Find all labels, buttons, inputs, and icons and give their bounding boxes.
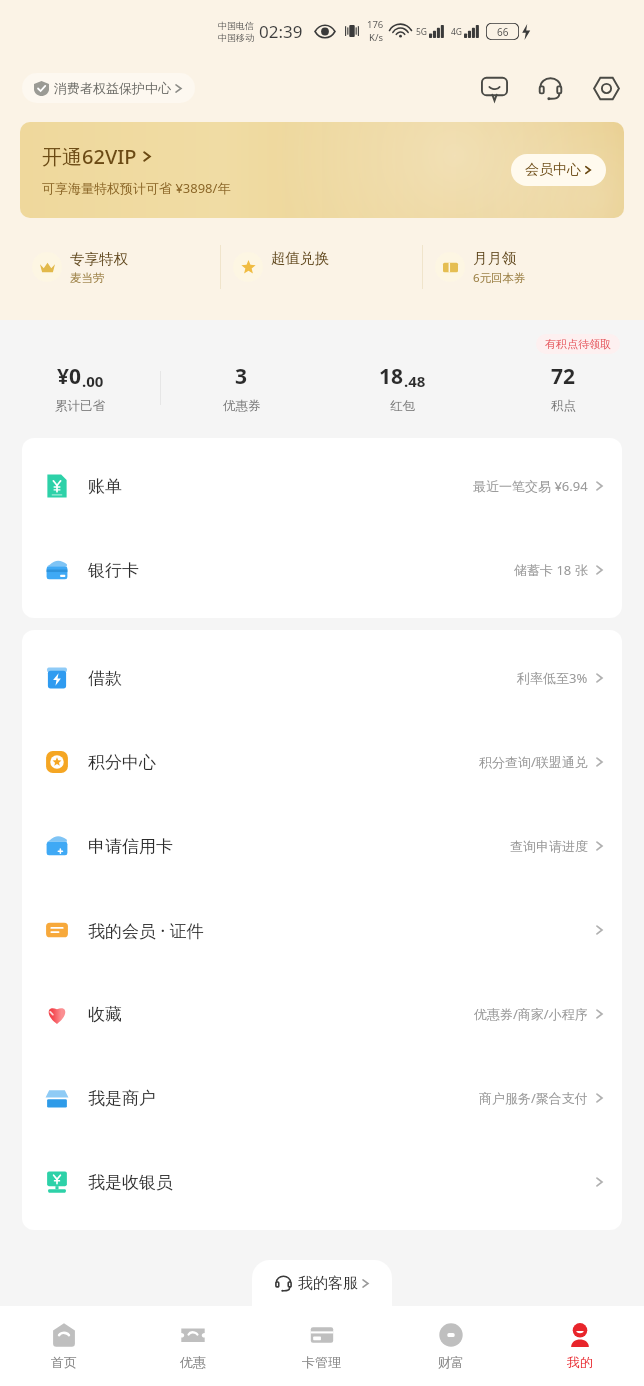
staticText: 72 xyxy=(551,362,576,391)
staticText: 卡管理 xyxy=(302,1354,341,1370)
staticText: 5G xyxy=(416,26,428,38)
button[interactable]: 会员中心 xyxy=(511,154,606,186)
staticText: 6元回本券 xyxy=(473,270,526,286)
staticText: 3 xyxy=(235,362,248,391)
staticText: 02:39 xyxy=(259,20,303,43)
staticText: 借款 xyxy=(88,668,122,689)
staticText: 18 xyxy=(379,362,404,391)
staticText: 储蓄卡 18 张 xyxy=(514,561,588,579)
button[interactable]: 我是收银员 xyxy=(22,1140,622,1224)
staticText: 4G xyxy=(451,26,463,38)
button[interactable]: 收藏 xyxy=(22,972,622,1056)
button[interactable]: 月月领 xyxy=(423,228,624,306)
staticText: 优惠券/商家/小程序 xyxy=(474,1005,588,1023)
button[interactable]: 借款 xyxy=(22,636,622,720)
button[interactable]: 有积点待领取 xyxy=(536,334,620,354)
button[interactable]: Customer service xyxy=(530,68,570,108)
staticText: 月月领 xyxy=(473,249,517,267)
staticText: 首页 xyxy=(51,1354,77,1370)
button[interactable]: ¥0 xyxy=(0,348,160,428)
staticText: 积分中心 xyxy=(88,752,156,773)
staticText: 会员中心 xyxy=(525,161,581,179)
staticText: 66 xyxy=(497,25,509,39)
button[interactable]: 开通62VIP xyxy=(20,122,624,218)
staticText: 有积点待领取 xyxy=(545,337,611,351)
staticText: 我是收银员 xyxy=(88,1172,173,1193)
button[interactable]: 申请信用卡 xyxy=(22,804,622,888)
staticText: 最近一笔交易 ¥6.94 xyxy=(473,477,588,495)
staticText: 优惠券 xyxy=(223,398,261,414)
staticText: 积点 xyxy=(551,398,576,414)
staticText: 优惠 xyxy=(180,1354,206,1370)
staticText: 我的 xyxy=(567,1354,593,1370)
button[interactable]: 18 xyxy=(322,348,483,428)
staticText: 累计已省 xyxy=(55,398,105,414)
staticText: 利率低至3% xyxy=(517,669,588,687)
staticText: 商户服务/聚合支付 xyxy=(479,1089,588,1107)
staticText: 收藏 xyxy=(88,1004,122,1025)
staticText: 积分查询/联盟通兑 xyxy=(479,753,588,771)
button[interactable]: Messages xyxy=(474,68,514,108)
button[interactable]: 72 xyxy=(483,348,644,428)
button[interactable]: 优惠 xyxy=(128,1306,257,1386)
staticText: 消费者权益保护中心 xyxy=(54,80,171,96)
staticText: 中国移动 xyxy=(218,32,254,43)
staticText: .00 xyxy=(82,371,104,391)
staticText: 专享特权 xyxy=(70,250,128,268)
staticText: 我的客服 xyxy=(298,1274,358,1293)
staticText: ¥0 xyxy=(57,362,82,391)
button[interactable]: 积分中心 xyxy=(22,720,622,804)
button[interactable]: 3 xyxy=(161,348,322,428)
staticText: 我是商户 xyxy=(88,1088,156,1109)
button[interactable]: 卡管理 xyxy=(257,1306,386,1386)
staticText: 中国电信 xyxy=(218,20,254,31)
button[interactable]: 账单 xyxy=(22,444,622,528)
button[interactable]: 专享特权 xyxy=(20,228,220,306)
staticText: 账单 xyxy=(88,476,122,497)
staticText: 红包 xyxy=(390,398,415,414)
staticText: 开通62VIP xyxy=(42,143,137,170)
button[interactable]: 我的客服 xyxy=(252,1260,392,1306)
button[interactable]: 超值兑换 xyxy=(221,228,422,306)
button[interactable]: 首页 xyxy=(0,1306,128,1386)
button[interactable]: 银行卡 xyxy=(22,528,622,612)
button[interactable]: 我的 xyxy=(515,1306,644,1386)
staticText: 银行卡 xyxy=(88,560,139,581)
button[interactable]: 我是商户 xyxy=(22,1056,622,1140)
staticText: 申请信用卡 xyxy=(88,836,173,857)
staticText: 可享海量特权预计可省 ¥3898/年 xyxy=(42,179,231,197)
staticText: 财富 xyxy=(438,1354,464,1370)
staticText: 我的会员 · 证件 xyxy=(88,919,204,942)
staticText: 麦当劳 xyxy=(70,271,105,285)
button[interactable]: 我的会员 · 证件 xyxy=(22,888,622,972)
button[interactable]: 财富 xyxy=(386,1306,515,1386)
staticText: K/s xyxy=(369,31,383,44)
staticText: 176 xyxy=(367,18,384,31)
staticText: .48 xyxy=(404,371,426,391)
button[interactable]: 消费者权益保护中心 xyxy=(22,73,195,103)
staticText: 查询申请进度 xyxy=(510,838,588,854)
button[interactable]: Settings xyxy=(586,68,626,108)
staticText: 超值兑换 xyxy=(271,249,329,267)
